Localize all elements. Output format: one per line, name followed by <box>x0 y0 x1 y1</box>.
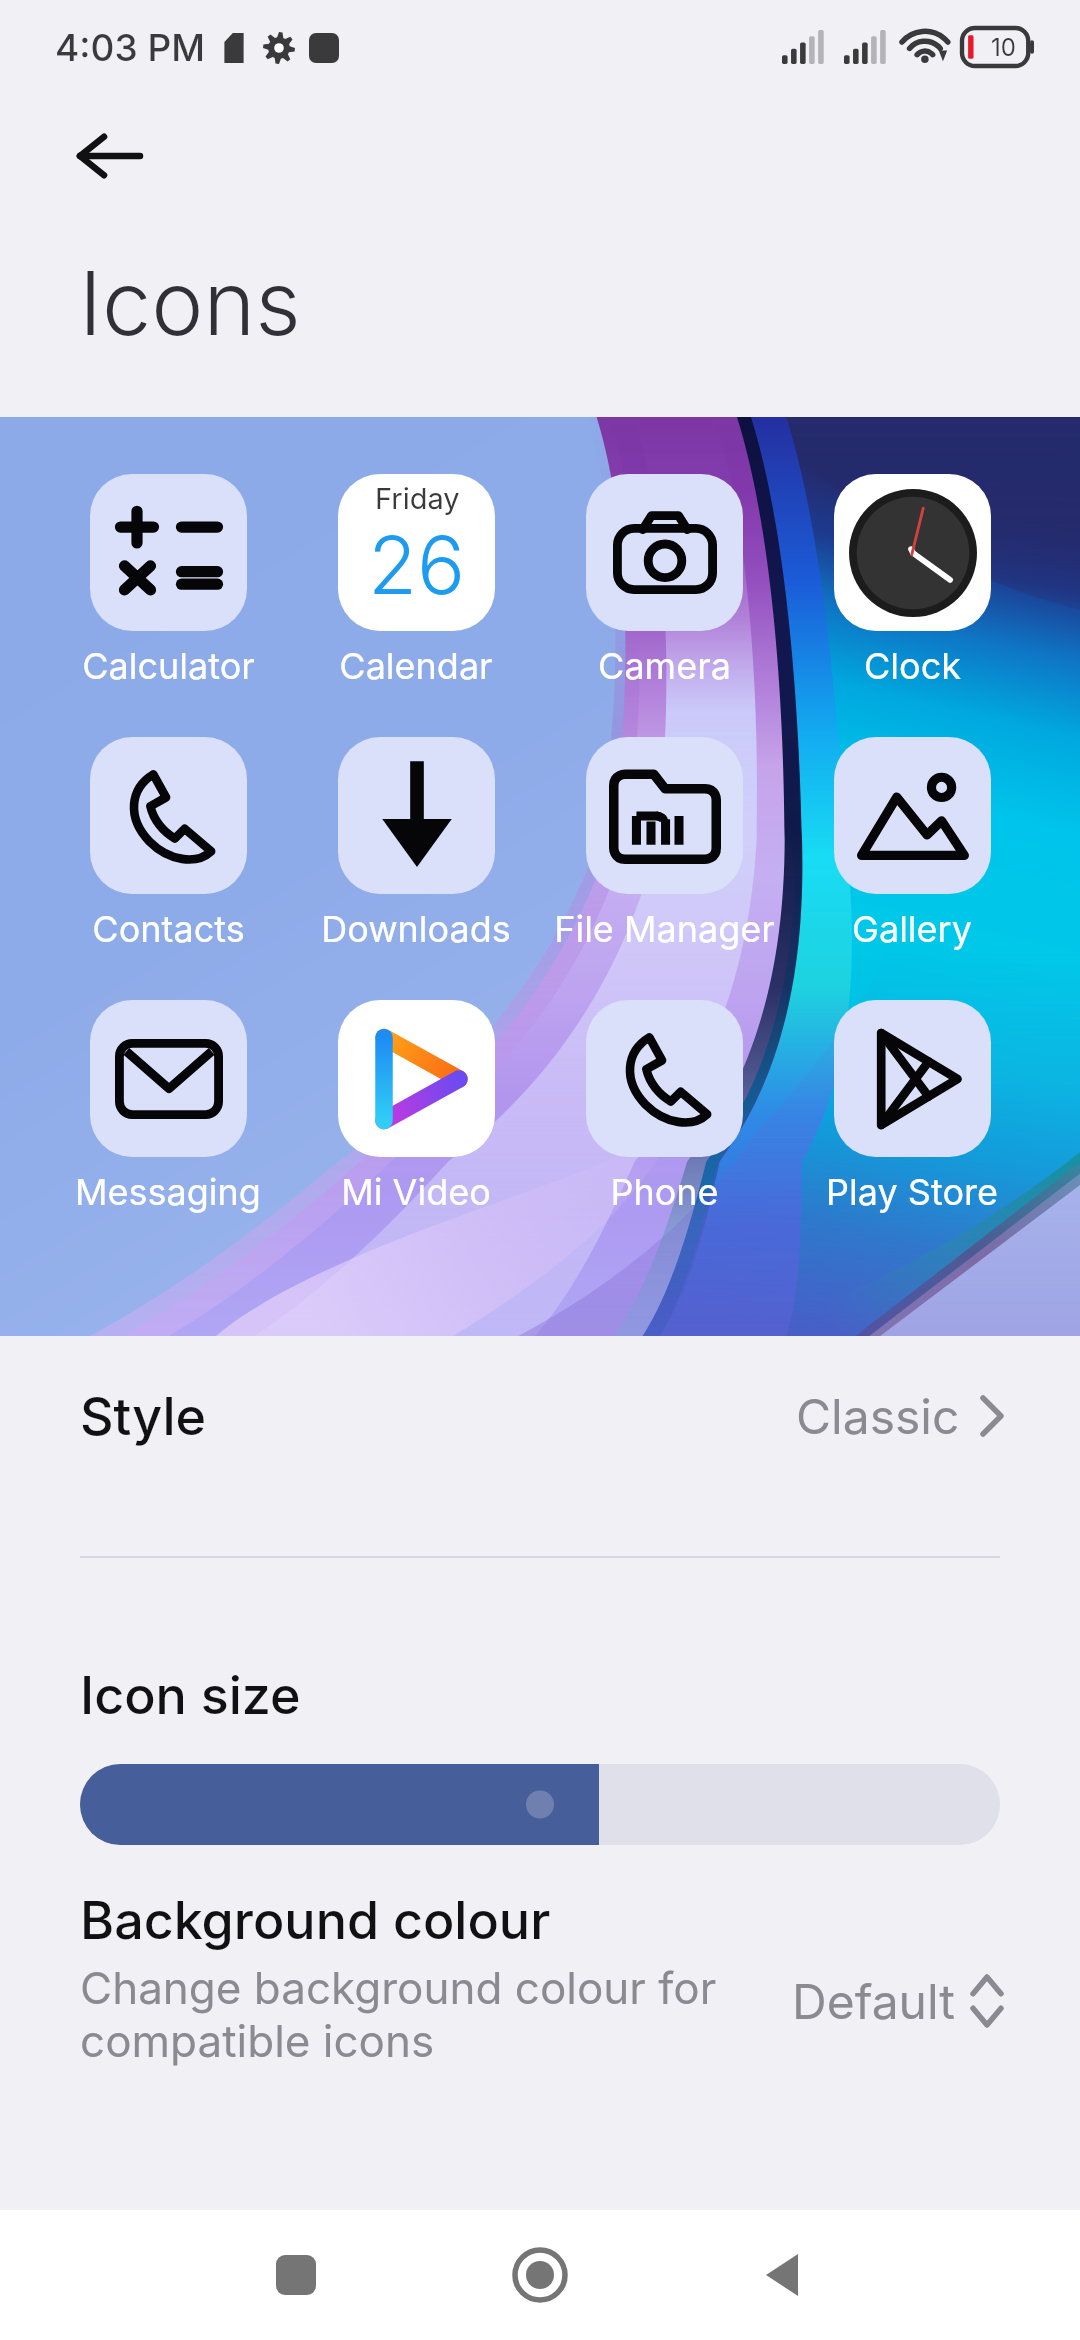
button[interactable]: Clock <box>788 474 1036 688</box>
staticText: Play Store <box>826 1170 998 1214</box>
button[interactable]: Phone <box>540 1000 788 1214</box>
button[interactable]: Friday <box>292 474 540 688</box>
button[interactable]: Messaging <box>44 1000 292 1214</box>
button[interactable]: Home <box>480 2210 600 2340</box>
staticText: Friday <box>375 481 460 516</box>
staticText: 26 <box>368 516 466 613</box>
button[interactable]: Play Store <box>788 1000 1036 1214</box>
button[interactable]: Style <box>0 1336 1080 1496</box>
button[interactable]: Default <box>700 1956 1004 2046</box>
button[interactable]: Back <box>722 2210 842 2340</box>
staticText: Mi Video <box>341 1170 491 1214</box>
staticText: Icons <box>79 250 301 356</box>
staticText: 4:03 PM <box>55 25 205 70</box>
staticText: Phone <box>610 1170 719 1214</box>
button[interactable]: Camera <box>540 474 788 688</box>
button[interactable]: File Manager <box>540 737 788 951</box>
button[interactable]: Downloads <box>292 737 540 951</box>
staticText: Style <box>80 1385 207 1448</box>
button[interactable]: Back <box>55 102 163 210</box>
button[interactable]: Icon size slider <box>80 1764 1000 1845</box>
button[interactable]: Mi Video <box>292 1000 540 1214</box>
staticText: Contacts <box>92 907 245 951</box>
button[interactable]: Calculator <box>44 474 292 688</box>
staticText: Change background colour for compatible … <box>80 1961 717 2068</box>
staticText: Calendar <box>339 644 493 688</box>
button[interactable]: Gallery <box>788 737 1036 951</box>
staticText: 10 <box>991 33 1016 62</box>
staticText: Icon size <box>80 1664 301 1727</box>
button[interactable]: Recents <box>236 2210 356 2340</box>
staticText: Gallery <box>852 907 972 951</box>
staticText: Clock <box>864 644 961 688</box>
staticText: Messaging <box>75 1170 261 1214</box>
staticText: Classic <box>796 1387 960 1445</box>
staticText: File Manager <box>554 907 775 951</box>
staticText: Camera <box>598 644 731 688</box>
staticText: Background colour <box>80 1889 551 1952</box>
staticText: Default <box>792 1972 956 2030</box>
staticText: Calculator <box>82 644 255 688</box>
button[interactable]: Contacts <box>44 737 292 951</box>
staticText: Downloads <box>321 907 511 951</box>
